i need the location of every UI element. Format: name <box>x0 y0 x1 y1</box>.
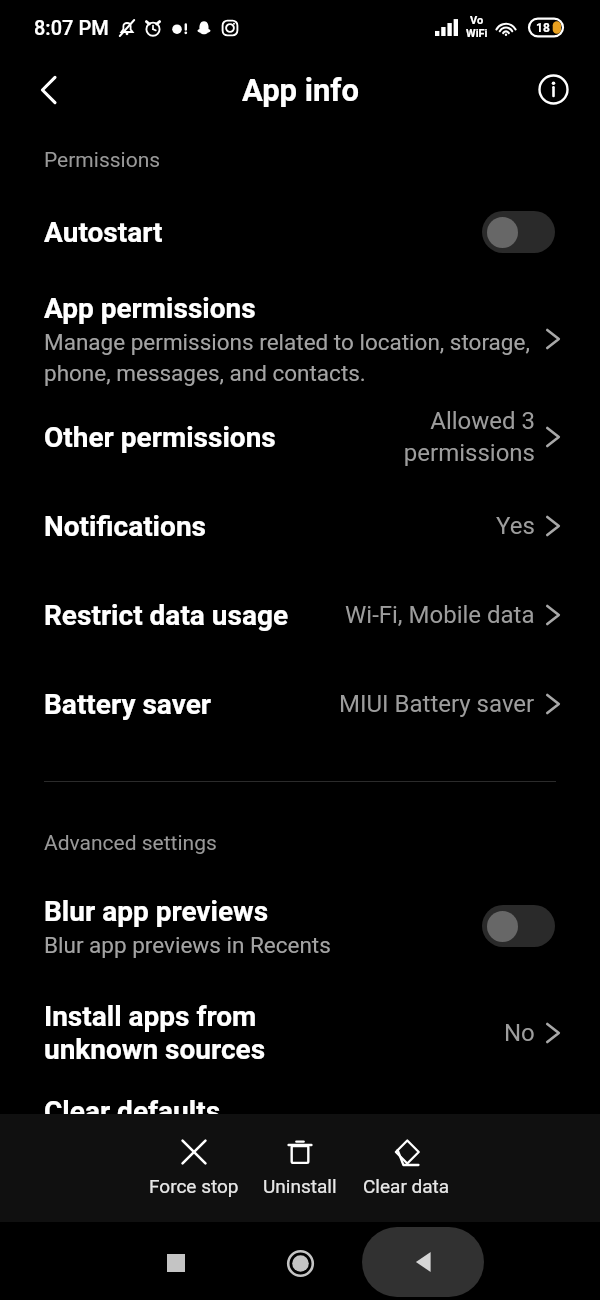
staticText: Autostart <box>44 216 163 249</box>
staticText: No <box>504 1019 535 1047</box>
button[interactable]: App details <box>526 62 580 116</box>
button[interactable]: Other permissions <box>0 403 600 471</box>
staticText: Advanced settings <box>44 831 217 856</box>
staticText: Uninstall <box>263 1175 337 1197</box>
button[interactable]: Battery saver <box>0 670 600 738</box>
staticText: WiFi <box>466 27 488 40</box>
button[interactable]: Recent apps <box>153 1240 199 1286</box>
staticText: Wi-Fi, Mobile data <box>345 601 535 629</box>
staticText: Blur app previews in Recents <box>44 932 331 958</box>
staticText: Manage permissions related to location, … <box>44 329 530 386</box>
staticText: Clear data <box>363 1175 450 1197</box>
staticText: Notifications <box>44 510 206 543</box>
staticText: Battery saver <box>44 688 212 721</box>
staticText: MIUI Battery saver <box>339 690 535 718</box>
staticText: 18 <box>536 21 550 35</box>
staticText: Force stop <box>149 1175 239 1197</box>
staticText: Yes <box>496 512 535 540</box>
staticText: 8:07 PM <box>34 16 109 39</box>
button[interactable]: Toggle <box>482 905 555 947</box>
button[interactable]: Back <box>22 63 76 117</box>
staticText: Vo <box>470 14 484 27</box>
button[interactable]: Autostart <box>0 198 600 266</box>
staticText: Blur app previews <box>44 895 269 928</box>
button[interactable]: App permissions <box>0 285 600 393</box>
button[interactable]: Clear defaults <box>0 1077 600 1145</box>
button[interactable]: Force stop <box>141 1135 247 1201</box>
button[interactable]: Notifications <box>0 492 600 560</box>
button[interactable]: Uninstall <box>247 1135 353 1201</box>
staticText: Clear defaults <box>44 1095 221 1128</box>
button[interactable]: Clear data <box>353 1135 459 1201</box>
button[interactable]: Blur app previews <box>0 884 600 968</box>
staticText: Allowed 3 permissions <box>383 407 535 467</box>
staticText: App permissions <box>44 292 256 325</box>
staticText: App info <box>242 72 359 108</box>
button[interactable]: Home <box>277 1240 323 1286</box>
button[interactable]: Restrict data usage <box>0 581 600 649</box>
button[interactable]: Toggle <box>482 211 555 253</box>
button[interactable]: Back <box>362 1227 484 1297</box>
staticText: Restrict data usage <box>44 599 289 632</box>
staticText: Other permissions <box>44 421 276 454</box>
button[interactable]: Install apps from unknown sources <box>0 990 600 1076</box>
staticText: Permissions <box>44 148 161 173</box>
staticText: Install apps from unknown sources <box>44 1000 266 1066</box>
